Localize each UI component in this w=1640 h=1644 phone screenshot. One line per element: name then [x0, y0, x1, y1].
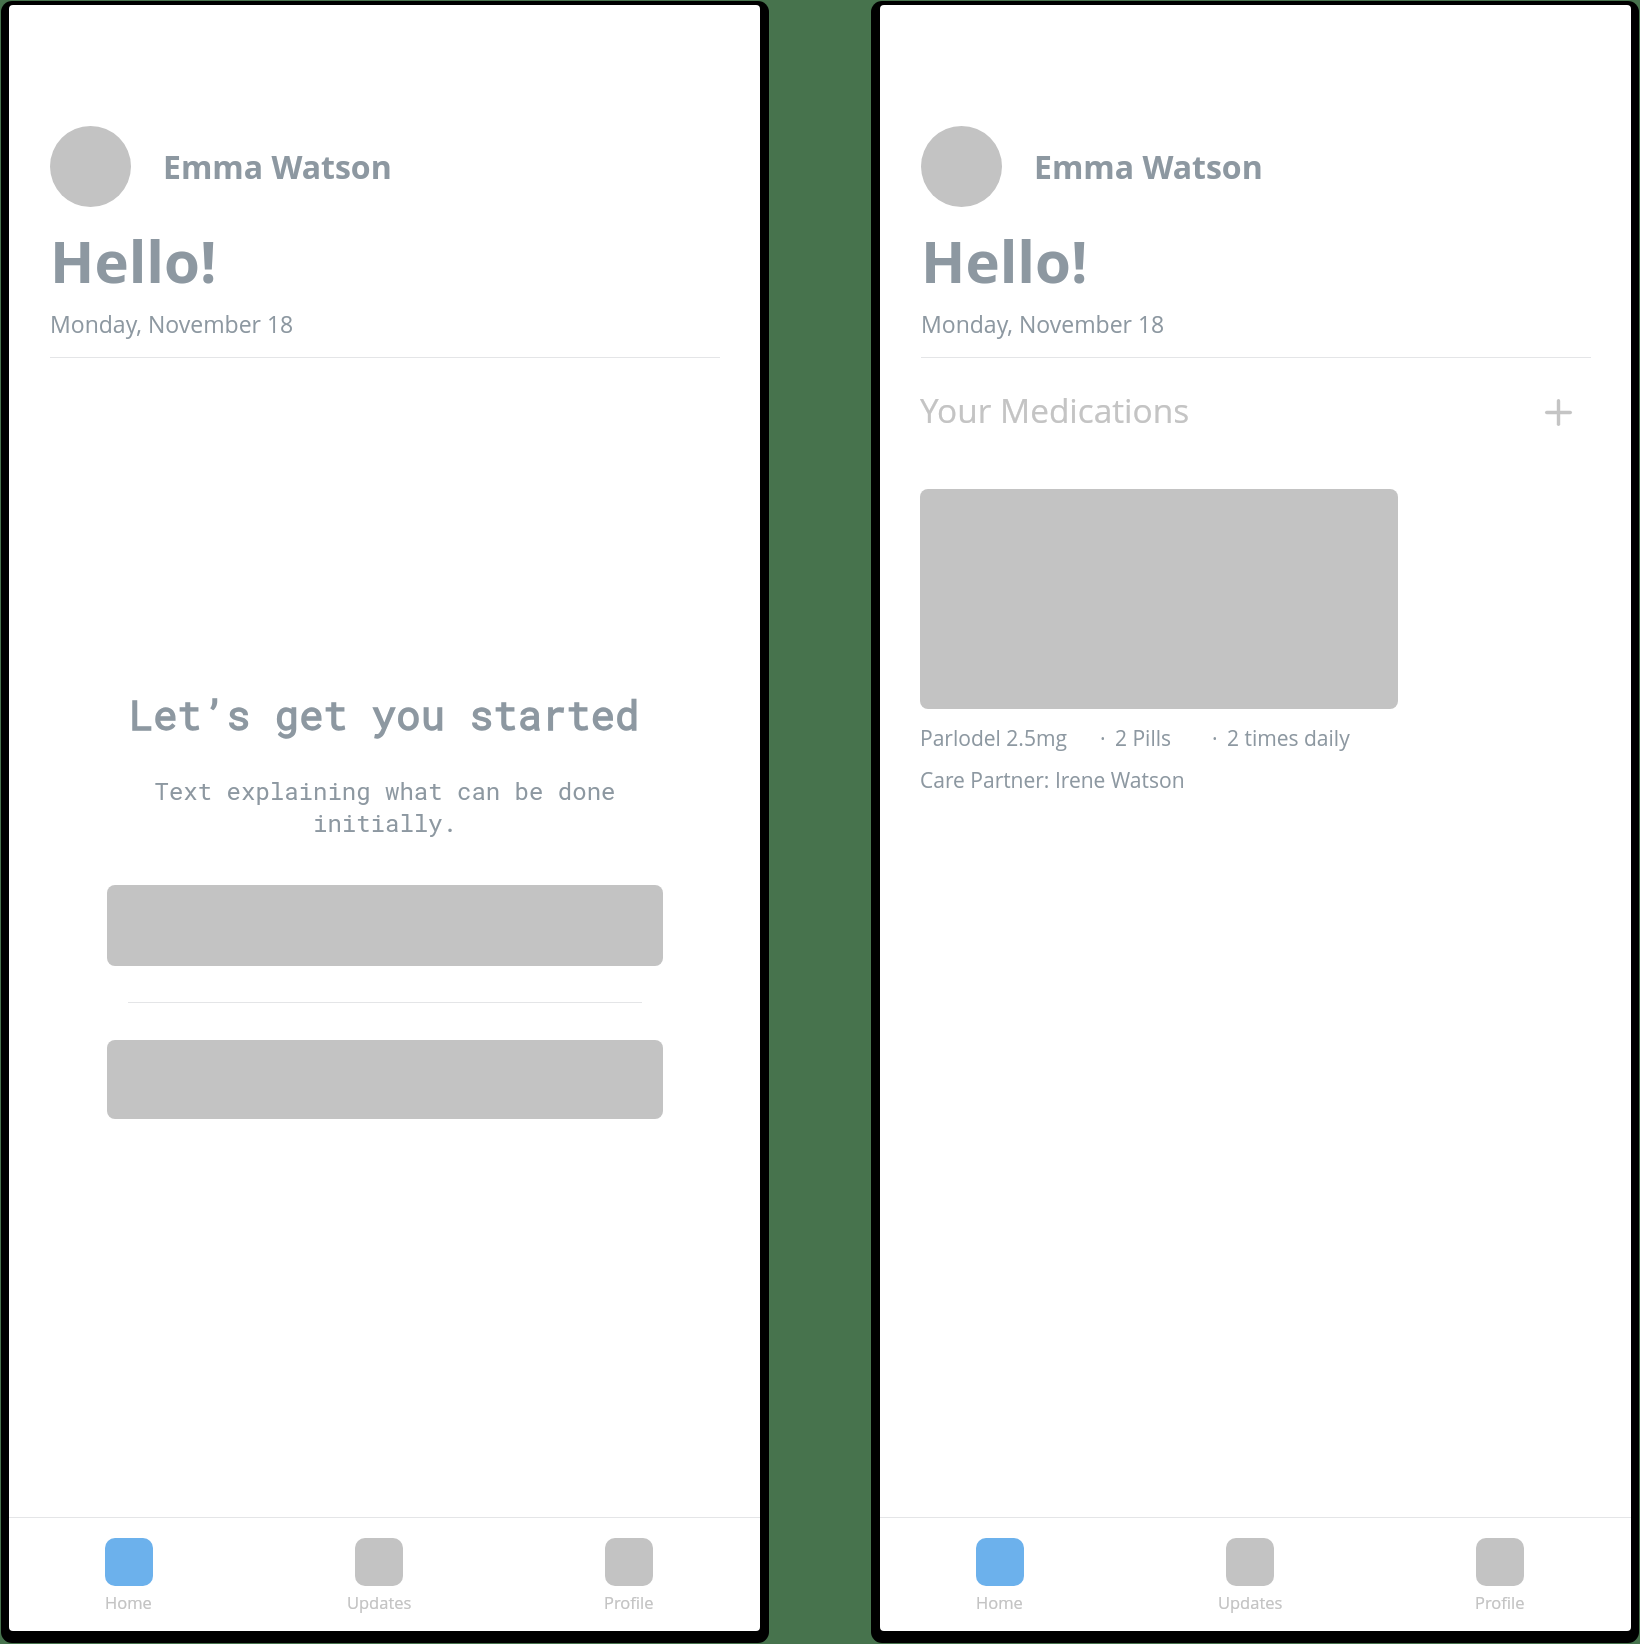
- staticText: Home: [976, 1591, 1023, 1613]
- staticText: Emma Watson: [163, 145, 392, 189]
- staticText: Hello!: [50, 221, 217, 300]
- staticText: Hello!: [921, 221, 1088, 300]
- staticText: 2 times daily: [1227, 724, 1350, 753]
- button[interactable]: Updates: [254, 1518, 504, 1631]
- other: Profile photo: [50, 126, 131, 207]
- staticText: Monday, November 18: [921, 308, 1165, 339]
- staticText: Monday, November 18: [50, 308, 294, 339]
- staticText: Emma Watson: [1034, 145, 1263, 189]
- button[interactable]: Profile photo: [921, 126, 1263, 207]
- staticText: ·: [1100, 724, 1106, 753]
- button[interactable]: Profile: [1375, 1518, 1625, 1631]
- button[interactable]: Profile: [504, 1518, 754, 1631]
- staticText: Updates: [1218, 1591, 1283, 1613]
- staticText: Care Partner: Irene Watson: [920, 766, 1185, 795]
- staticText: Let’s get you started: [129, 688, 640, 741]
- button[interactable]: Home: [880, 1518, 1125, 1631]
- staticText: Your Medications: [920, 387, 1190, 432]
- staticText: Profile: [604, 1591, 654, 1613]
- button[interactable]: Profile photo: [50, 126, 392, 207]
- button[interactable]: Add medication: [1541, 395, 1575, 429]
- staticText: Text explaining what can be done initial…: [150, 775, 620, 839]
- staticText: Updates: [347, 1591, 412, 1613]
- button[interactable]: Home: [9, 1518, 254, 1631]
- staticText: ·: [1212, 724, 1218, 753]
- staticText: 2 Pills: [1115, 724, 1172, 753]
- staticText: Parlodel 2.5mg: [920, 724, 1067, 753]
- other: Profile photo: [921, 126, 1002, 207]
- staticText: Home: [105, 1591, 152, 1613]
- staticText: Profile: [1475, 1591, 1525, 1613]
- button[interactable]: Updates: [1125, 1518, 1375, 1631]
